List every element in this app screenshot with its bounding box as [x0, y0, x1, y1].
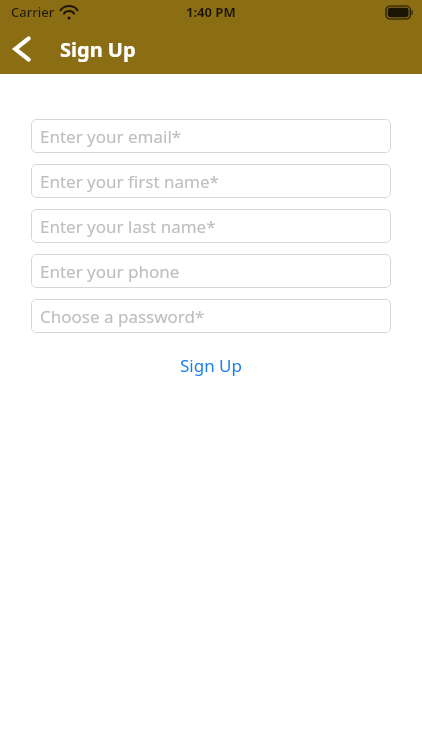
staticText: Choose a password*	[40, 305, 205, 328]
staticText: Enter your last name*	[40, 215, 216, 238]
staticText: Sign Up	[180, 354, 242, 377]
button[interactable]: Choose a password*	[31, 299, 391, 333]
button[interactable]: Enter your last name*	[31, 209, 391, 243]
button[interactable]: Enter your first name*	[31, 164, 391, 198]
staticText: 1:40 PM	[186, 3, 236, 21]
staticText: Enter your email*	[40, 125, 182, 148]
button[interactable]: Enter your email*	[31, 119, 391, 153]
staticText: Enter your phone	[40, 260, 180, 283]
button[interactable]: Sign Up	[31, 350, 391, 380]
staticText: Sign Up	[60, 36, 136, 63]
button[interactable]: Back	[0, 27, 44, 71]
staticText: Carrier	[11, 3, 55, 21]
staticText: Enter your first name*	[40, 170, 219, 193]
button[interactable]: Enter your phone	[31, 254, 391, 288]
